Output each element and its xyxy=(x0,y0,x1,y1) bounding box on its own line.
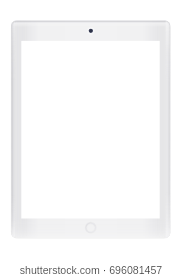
staticText: shutterstock.com · 696081457 xyxy=(0,264,182,276)
button[interactable]: Home button xyxy=(85,222,96,233)
